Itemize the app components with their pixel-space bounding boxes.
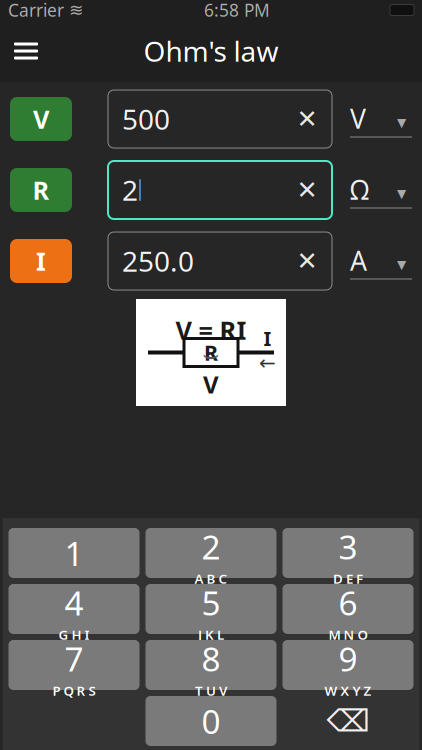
staticText: V	[350, 101, 366, 136]
button[interactable]: Clear	[290, 102, 324, 136]
button[interactable]: 6	[282, 584, 413, 634]
staticText: D E F	[333, 570, 363, 587]
button[interactable]: 3	[282, 528, 413, 578]
button[interactable]: 8	[145, 640, 276, 690]
staticText: 6:58 PM	[204, 0, 270, 21]
staticText: ≋	[69, 0, 84, 20]
button[interactable]: 1	[8, 528, 139, 578]
staticText: 6	[338, 580, 357, 625]
staticText: ✕	[296, 105, 317, 133]
staticText: A	[350, 243, 367, 278]
staticText: 2	[201, 524, 220, 569]
button[interactable]: Unit V	[350, 97, 412, 141]
staticText: 8	[201, 636, 220, 681]
staticText: 9	[338, 636, 357, 681]
staticText: Carrier	[8, 0, 64, 21]
button[interactable]: Clear	[290, 244, 324, 278]
staticText: Ω	[350, 172, 369, 207]
staticText: 500	[122, 100, 170, 138]
staticText: G H I	[58, 626, 89, 643]
button[interactable]: 4	[8, 584, 139, 634]
staticText: Ohm's law	[143, 32, 278, 70]
staticText: ▼	[397, 116, 406, 129]
staticText: R	[204, 338, 218, 367]
button[interactable]: Menu	[0, 25, 52, 77]
button[interactable]: I	[10, 239, 72, 283]
staticText: V	[203, 368, 219, 400]
staticText: 2	[122, 171, 138, 209]
staticText: 5	[201, 580, 220, 625]
staticText: J K L	[198, 626, 224, 643]
staticText: 250.0	[122, 242, 194, 280]
staticText: ▼	[397, 187, 406, 200]
staticText: R	[32, 173, 49, 207]
staticText: W X Y Z	[324, 682, 371, 699]
staticText: V	[33, 102, 49, 136]
button[interactable]: Clear	[290, 173, 324, 207]
staticText: 0	[201, 699, 220, 743]
button[interactable]: Unit A	[350, 239, 412, 283]
staticText: ←	[259, 352, 276, 374]
button[interactable]: Unit Ω	[350, 168, 412, 212]
staticText: A B C	[194, 570, 227, 587]
staticText: 3	[338, 524, 357, 569]
button[interactable]: Delete	[282, 696, 413, 746]
staticText: 1	[64, 531, 83, 575]
button[interactable]: 7	[8, 640, 139, 690]
button[interactable]: 2	[145, 528, 276, 578]
staticText: ✕	[296, 176, 317, 204]
staticText: I	[36, 244, 46, 278]
staticText: 7	[64, 636, 83, 681]
staticText: V = RI	[175, 313, 246, 347]
button[interactable]: V	[10, 97, 72, 141]
staticText: I	[263, 325, 271, 352]
staticText: M N O	[328, 626, 367, 643]
staticText: ✕	[296, 247, 317, 275]
staticText: ▼	[397, 258, 406, 271]
staticText: ⌫	[326, 704, 369, 738]
button[interactable]: 9	[282, 640, 413, 690]
staticText: ⌣	[202, 342, 220, 368]
button[interactable]: 0	[145, 696, 276, 746]
staticText: P Q R S	[52, 682, 95, 699]
staticText: T U V	[195, 682, 227, 699]
button[interactable]: R	[10, 168, 72, 212]
button[interactable]: 5	[145, 584, 276, 634]
staticText: 4	[64, 580, 83, 625]
